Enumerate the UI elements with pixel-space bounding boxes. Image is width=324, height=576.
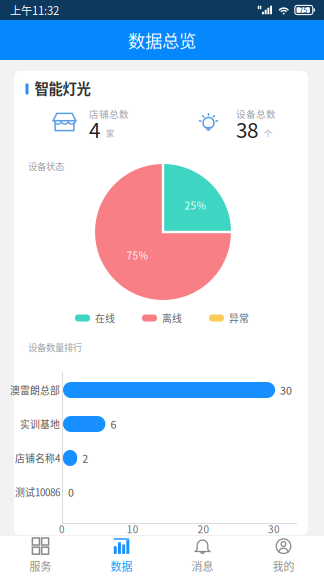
staticText: 38 (236, 114, 258, 144)
staticText: 家 (106, 127, 114, 139)
staticText: 我的 (272, 558, 294, 574)
staticText: 25% (184, 198, 205, 212)
staticText: 10 (127, 522, 139, 536)
staticText: 75% (126, 248, 147, 262)
staticText: 6 (110, 416, 116, 432)
staticText: 20 (197, 522, 209, 536)
button[interactable]: 我的 (243, 536, 324, 576)
staticText: 离线 (162, 311, 182, 325)
staticText: 0 (68, 484, 74, 500)
button[interactable]: 服务 (0, 536, 81, 576)
staticText: 智能灯光 (34, 78, 90, 98)
staticText: 数据 (110, 558, 132, 574)
staticText: 在线 (95, 311, 115, 325)
staticText: 30 (280, 382, 292, 398)
button[interactable]: 数据 (81, 536, 162, 576)
staticText: 设备数量排行 (28, 340, 82, 354)
staticText: 异常 (229, 311, 249, 325)
staticText: 4 (89, 114, 100, 144)
staticText: 设备状态 (28, 159, 64, 173)
staticText: 2 (82, 450, 88, 466)
staticText: 测试10086 (15, 485, 60, 499)
staticText: 服务 (29, 558, 51, 574)
staticText: 75 (299, 5, 307, 15)
staticText: 店铺总数 (89, 106, 129, 120)
staticText: 消息 (191, 558, 213, 574)
staticText: 数据总览 (128, 27, 196, 53)
button[interactable]: 消息 (162, 536, 243, 576)
staticText: 澳雷朗总部 (10, 383, 60, 397)
staticText: 个 (264, 127, 272, 139)
staticText: 实训基地 (20, 417, 60, 431)
staticText: 店铺名称4 (15, 451, 60, 465)
staticText: 上午11:32 (10, 2, 59, 18)
staticText: 30 (268, 522, 280, 536)
staticText: 设备总数 (236, 106, 276, 120)
staticText: 0 (59, 522, 65, 536)
